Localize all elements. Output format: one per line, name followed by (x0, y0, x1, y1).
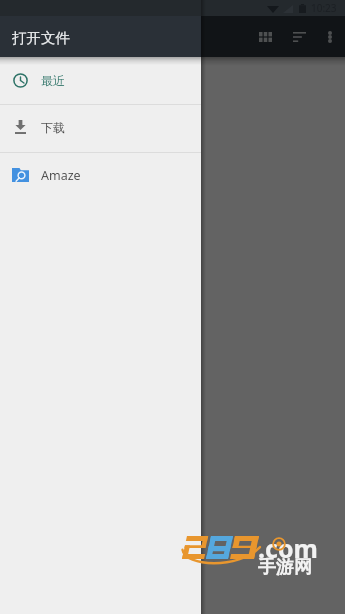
button[interactable]: 最近 (0, 57, 201, 104)
staticText: 手游网 (258, 556, 312, 579)
button[interactable]: More options (317, 24, 343, 50)
staticText: 打开文件 (12, 29, 70, 47)
staticText: .com (258, 531, 318, 565)
staticText: 最近 (41, 73, 65, 88)
button[interactable]: Grid view (252, 24, 278, 50)
staticText: Amaze (41, 167, 81, 184)
staticText: 下载 (41, 120, 65, 135)
button[interactable]: 下载 (0, 105, 201, 152)
button[interactable]: Amaze (0, 153, 201, 200)
button[interactable]: Sort (286, 24, 312, 50)
